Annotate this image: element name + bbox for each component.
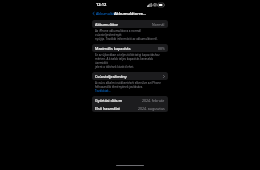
other: Megnyitás	[163, 75, 165, 78]
staticText: Akkumulátorra...	[114, 11, 147, 16]
staticText: Gyártási dátum	[95, 98, 123, 103]
staticText: Első használat	[95, 106, 120, 111]
staticText: Maximális kapacitás	[95, 46, 131, 51]
button[interactable]: Csúcsteljesítmény	[92, 72, 168, 80]
button[interactable]: Továbbiak...	[95, 89, 111, 93]
staticText: 2024. február	[142, 98, 165, 103]
staticText: 2024. augusztus	[138, 106, 165, 111]
button[interactable]: Maximális kapacitás	[92, 44, 168, 52]
staticText: Akkumulátor	[96, 11, 118, 16]
button[interactable]: Első használat	[92, 104, 168, 112]
button[interactable]: Akkumulátor	[92, 20, 168, 28]
staticText: Ez az újkorában a teljes töltöttségi kap…	[95, 53, 165, 69]
staticText: A csúcs alkalmi csökkentését elkerülve a…	[95, 81, 161, 89]
staticText: Normál	[152, 22, 165, 27]
staticText: 88%	[158, 46, 165, 51]
staticText: Az iPhone akkumulátora a normál csúcstel…	[95, 29, 165, 41]
button[interactable]: Gyártási dátum	[92, 96, 168, 104]
staticText: Akkumulátor	[95, 22, 118, 27]
staticText: 12:12	[96, 2, 107, 7]
button[interactable]: Akkumulátor	[91, 10, 119, 17]
staticText: Csúcsteljesítmény	[95, 74, 127, 79]
